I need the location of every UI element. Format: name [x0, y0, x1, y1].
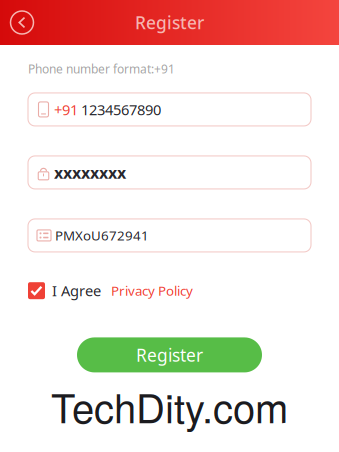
- staticText: Register: [136, 343, 203, 366]
- staticText: Privacy Policy: [111, 282, 193, 299]
- staticText: Phone number format:+91: [28, 61, 175, 77]
- button[interactable]: I Agree: [28, 282, 45, 299]
- staticText: TechDity.com: [51, 377, 288, 435]
- button[interactable]: Privacy Policy: [111, 282, 193, 299]
- staticText: xxxxxxxx: [54, 162, 126, 183]
- button[interactable]: Register: [77, 337, 262, 372]
- staticText: PMXoU672941: [55, 227, 149, 244]
- staticText: +91: [54, 100, 78, 119]
- button[interactable]: Back: [7, 7, 37, 37]
- staticText: 1234567890: [81, 100, 161, 119]
- staticText: I Agree: [52, 281, 101, 300]
- staticText: Register: [135, 11, 204, 34]
